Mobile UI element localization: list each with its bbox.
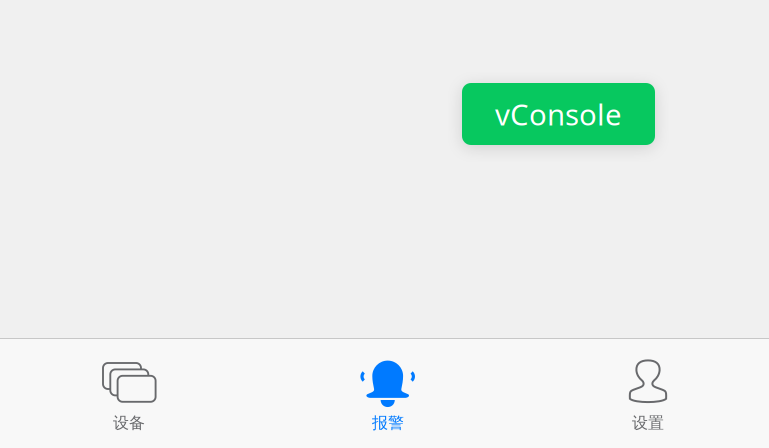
staticText: 设备 — [113, 413, 145, 433]
staticText: 报警 — [372, 413, 404, 433]
button[interactable]: vConsole — [462, 83, 655, 145]
button[interactable]: 报警 — [328, 339, 448, 448]
staticText: 设置 — [632, 413, 664, 433]
button[interactable]: 设置 — [588, 339, 708, 448]
button[interactable]: 设备 — [69, 339, 189, 448]
staticText: vConsole — [495, 94, 622, 133]
